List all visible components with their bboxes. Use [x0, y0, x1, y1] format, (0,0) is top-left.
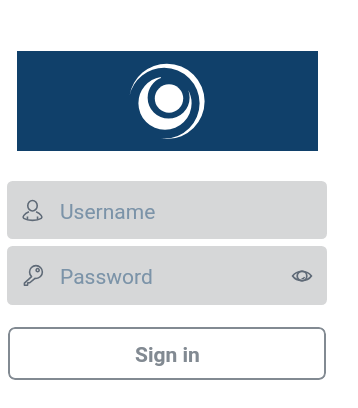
staticText: Password: [60, 265, 153, 290]
button[interactable]: Sign in: [8, 327, 326, 380]
button[interactable]: Password: [7, 246, 327, 305]
staticText: Username: [60, 200, 156, 225]
staticText: Sign in: [135, 343, 200, 368]
button[interactable]: Username: [7, 181, 327, 239]
button[interactable]: Show password: [285, 259, 318, 292]
